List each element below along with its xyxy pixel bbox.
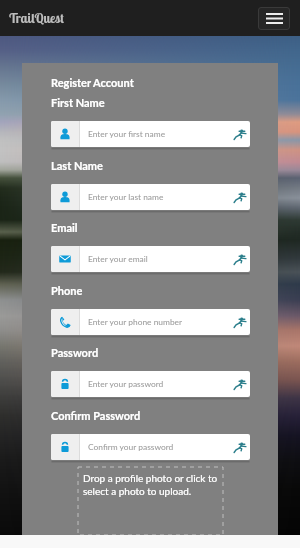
- button[interactable]: Enter your password: [51, 371, 250, 397]
- staticText: TrailQuest: [9, 10, 64, 26]
- staticText: Confirm your password: [88, 442, 233, 452]
- staticText: Email: [51, 221, 78, 234]
- button[interactable]: Confirm your password: [51, 434, 250, 460]
- staticText: Enter your last name: [88, 192, 233, 202]
- staticText: Phone: [51, 284, 83, 297]
- button[interactable]: Open navigation menu: [258, 7, 290, 30]
- staticText: Confirm Password: [51, 409, 141, 422]
- button[interactable]: Drop a profile photo or click to select …: [78, 467, 223, 535]
- staticText: First Name: [51, 96, 105, 109]
- staticText: Enter your first name: [88, 129, 233, 139]
- staticText: Password: [51, 346, 99, 359]
- staticText: Enter your email: [88, 254, 233, 264]
- staticText: Enter your password: [88, 379, 233, 389]
- button[interactable]: Enter your phone number: [51, 309, 250, 335]
- staticText: Drop a profile photo or click to select …: [83, 472, 218, 497]
- button[interactable]: Enter your last name: [51, 184, 250, 210]
- button[interactable]: Enter your email: [51, 246, 250, 272]
- button[interactable]: Enter your first name: [51, 121, 250, 147]
- staticText: Register Account: [51, 76, 134, 89]
- staticText: Last Name: [51, 159, 103, 172]
- staticText: Enter your phone number: [88, 317, 233, 327]
